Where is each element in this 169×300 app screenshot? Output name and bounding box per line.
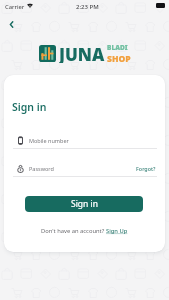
staticText: Don't have an account? (41, 227, 106, 235)
staticText: Sign in (12, 100, 47, 114)
staticText: Sign Up (106, 227, 128, 235)
staticText: Password (29, 165, 54, 172)
staticText: Carrier (5, 3, 25, 11)
button[interactable]: Back (4, 17, 19, 32)
staticText: BLADI (107, 43, 128, 52)
button[interactable]: Sign in (25, 196, 143, 212)
button[interactable]: Sign Up (106, 227, 128, 235)
button[interactable]: Forgot? (136, 165, 156, 172)
staticText: Forgot? (136, 165, 156, 172)
staticText: SHOP (107, 53, 131, 63)
staticText: 2:23 PM (76, 3, 99, 11)
staticText: JUNA (59, 43, 105, 63)
staticText: Mobile number (29, 137, 69, 144)
staticText: Sign in (71, 198, 98, 210)
